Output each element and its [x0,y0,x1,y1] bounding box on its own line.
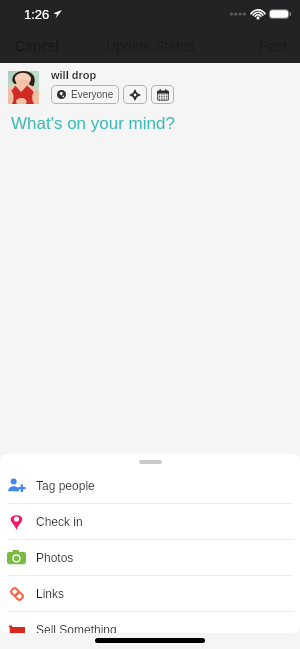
button[interactable]: Sell Something [0,612,300,633]
staticText: Tag people [36,479,95,492]
staticText: Check in [36,515,83,528]
button[interactable]: Photos [0,540,300,575]
staticText: Sell Something [36,623,117,633]
button[interactable]: Tag people [0,468,300,503]
button[interactable]: Check in [0,504,300,539]
staticText: Update Status [106,38,195,54]
staticText: Links [36,587,65,600]
staticText: What's on your mind? [11,114,175,133]
staticText: 1:26 [24,7,50,22]
button[interactable]: Location [123,85,147,104]
button[interactable]: Links [0,576,300,611]
button[interactable]: Everyone [51,85,119,104]
staticText: Photos [36,551,74,564]
button[interactable]: Calendar [151,85,174,104]
staticText: will drop [51,69,97,81]
staticText: Everyone [71,89,114,100]
